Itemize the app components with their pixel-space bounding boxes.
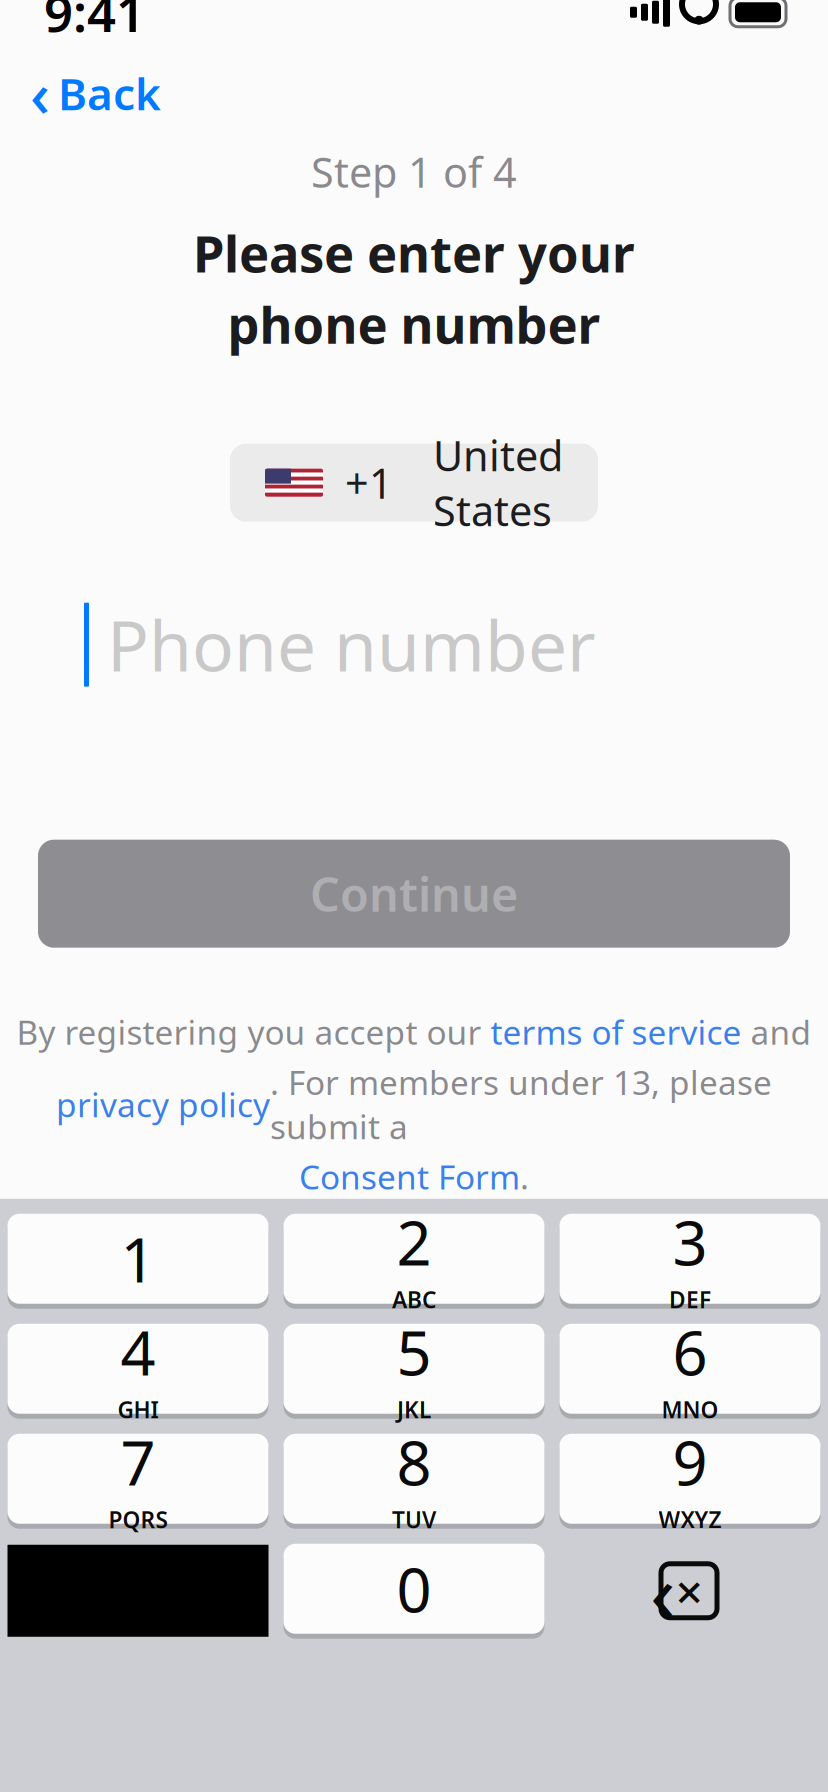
staticText: DEF [669,1284,711,1314]
button[interactable]: 7 [7,1433,268,1529]
staticText: GHI [117,1394,158,1424]
staticText: 4 [120,1311,155,1392]
staticText: Phone number [107,599,596,691]
staticText: United States [433,428,563,538]
staticText: +1 [345,455,393,510]
staticText: 7 [120,1421,155,1502]
staticText: JKL [397,1394,431,1424]
button[interactable]: +1 [230,444,598,522]
button[interactable]: 8 [283,1433,544,1529]
button[interactable]: Consent Form [299,1154,520,1199]
staticText: WXYZ [658,1504,721,1534]
button[interactable]: ‹ [0,40,191,146]
button[interactable]: 2 [283,1213,544,1309]
staticText: 9 [672,1421,707,1502]
staticText: By registering you accept our [16,1010,490,1054]
staticText: 1 [120,1218,155,1299]
button[interactable]: 3 [559,1213,820,1309]
button[interactable]: Delete [559,1545,820,1637]
staticText: 6 [672,1311,707,1392]
staticText: . For members under 13, please submit a [270,1060,772,1148]
button[interactable]: Continue [38,840,790,948]
staticText: and [741,1010,811,1054]
staticText: ‹ [650,1536,676,1646]
staticText: ‹ [30,52,50,134]
staticText: PQRS [108,1504,167,1534]
staticText: 3 [672,1201,707,1282]
staticText: TUV [392,1504,436,1534]
staticText: terms of service [490,1010,741,1054]
staticText: 2 [396,1201,431,1282]
staticText: ABC [392,1284,436,1314]
staticText: × [675,1559,702,1623]
staticText: Please enter your [193,219,635,286]
button[interactable]: 5 [283,1323,544,1419]
staticText: Consent Form [299,1154,520,1199]
staticText: privacy policy [56,1082,270,1126]
staticText: Step 1 of 4 [311,144,517,199]
button[interactable]: terms of service [490,1010,741,1054]
staticText: Continue [310,863,518,925]
staticText: Back [58,64,161,122]
staticText: 9:41 [44,0,145,46]
staticText: . [520,1154,529,1199]
button[interactable]: 6 [559,1323,820,1419]
button[interactable]: 1 [7,1213,268,1309]
staticText: MNO [661,1394,718,1424]
button[interactable]: 9 [559,1433,820,1529]
staticText: phone number [227,290,600,358]
staticText: 5 [396,1311,431,1392]
staticText: 8 [396,1421,431,1502]
staticText: 0 [396,1548,431,1629]
button[interactable]: 0 [283,1543,544,1639]
button[interactable]: privacy policy [56,1082,270,1126]
button[interactable]: 4 [7,1323,268,1419]
